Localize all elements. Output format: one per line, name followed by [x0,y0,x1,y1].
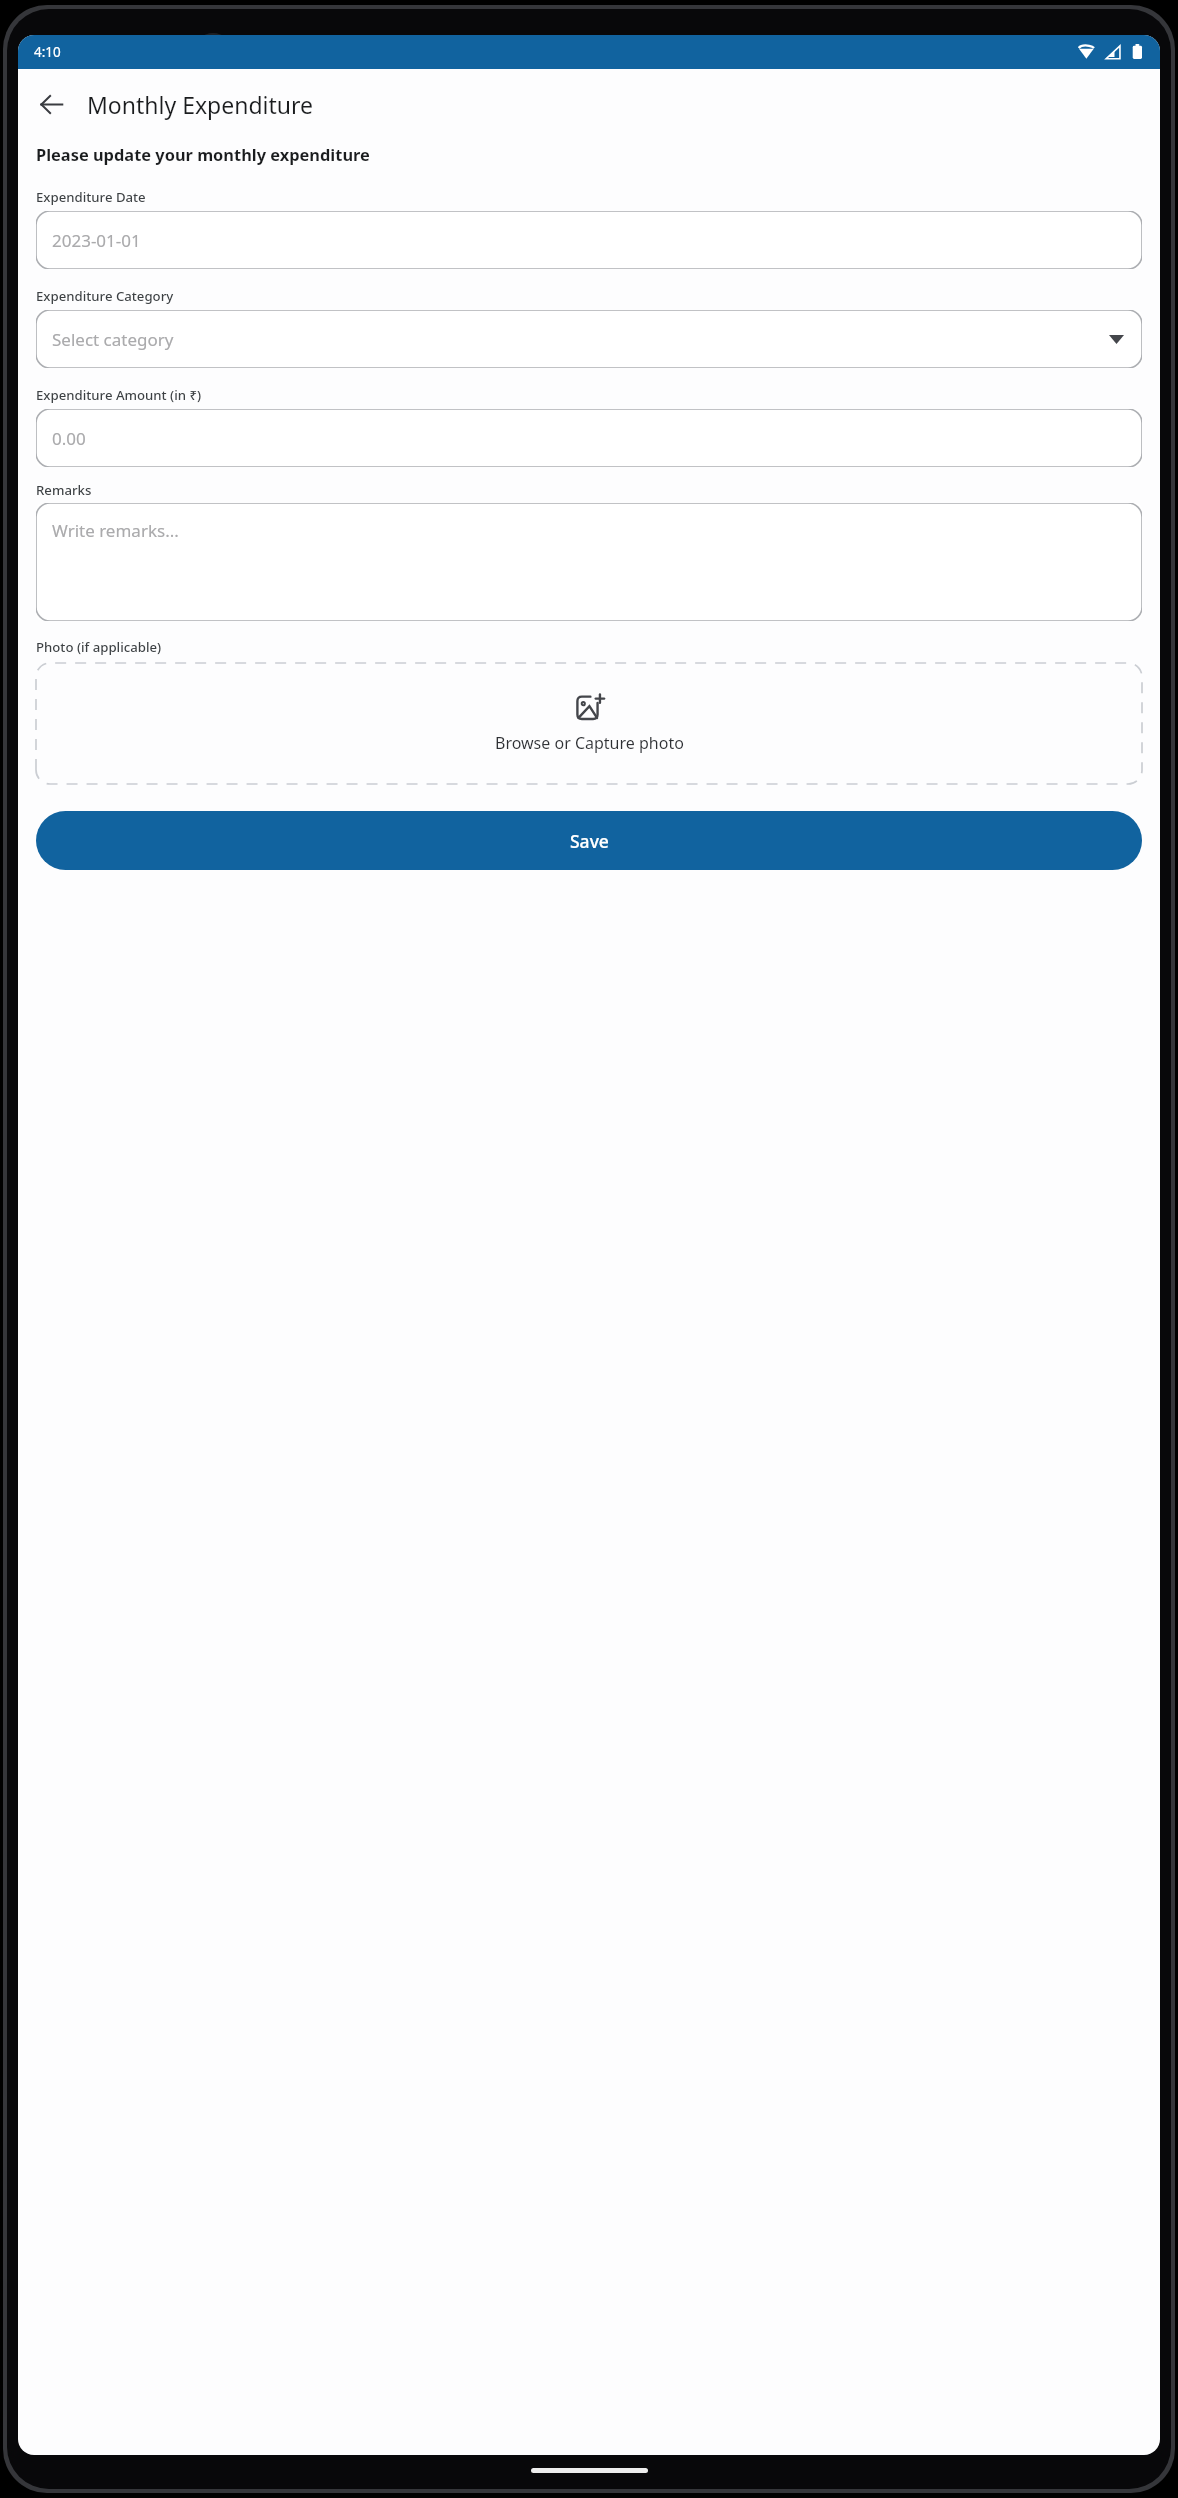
button[interactable]: Write remarks... [36,503,1142,621]
staticText: 4:10 [34,43,61,61]
button[interactable]: 2023-01-01 [36,211,1142,269]
staticText: Photo (if applicable) [36,638,162,656]
button[interactable]: Back [27,80,75,128]
staticText: Expenditure Date [36,188,146,206]
button[interactable]: Select category [36,310,1142,368]
staticText: Please update your monthly expenditure [36,143,370,165]
staticText: Expenditure Category [36,287,174,305]
button[interactable]: Save [36,811,1142,870]
staticText: 2023-01-01 [52,229,141,252]
button[interactable]: Browse or Capture photo [36,663,1142,784]
staticText: 0.00 [52,427,86,450]
staticText: Select category [52,328,1109,351]
staticText: Expenditure Amount (in ₹) [36,386,202,404]
button[interactable]: 0.00 [36,409,1142,467]
staticText: Monthly Expenditure [87,89,314,120]
staticText: Browse or Capture photo [495,732,684,754]
staticText: Remarks [36,481,92,499]
staticText: Save [570,829,609,853]
staticText: Write remarks... [52,519,179,542]
